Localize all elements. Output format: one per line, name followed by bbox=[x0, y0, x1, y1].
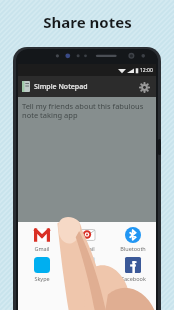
button[interactable]: Email bbox=[65, 227, 109, 252]
staticText: 12:00 bbox=[140, 67, 153, 74]
staticText: Email bbox=[80, 245, 95, 252]
staticText: S N bbox=[85, 275, 90, 288]
button[interactable]: S N bbox=[65, 257, 109, 288]
staticText: Share notes bbox=[43, 12, 132, 32]
staticText: Gmail bbox=[34, 245, 50, 252]
staticText: Simple Notepad bbox=[34, 82, 88, 92]
staticText: Bluetooth bbox=[120, 245, 146, 252]
button[interactable]: Bluetooth bbox=[111, 227, 155, 252]
button[interactable]: Facebook bbox=[111, 257, 155, 282]
staticText: Skype bbox=[34, 275, 50, 282]
button[interactable]: Settings bbox=[136, 79, 152, 95]
button[interactable]: Gmail bbox=[20, 227, 64, 252]
button[interactable]: Skype bbox=[20, 257, 64, 282]
staticText: Tell my friends about this fabulous note… bbox=[22, 101, 152, 121]
staticText: Facebook bbox=[121, 275, 146, 282]
